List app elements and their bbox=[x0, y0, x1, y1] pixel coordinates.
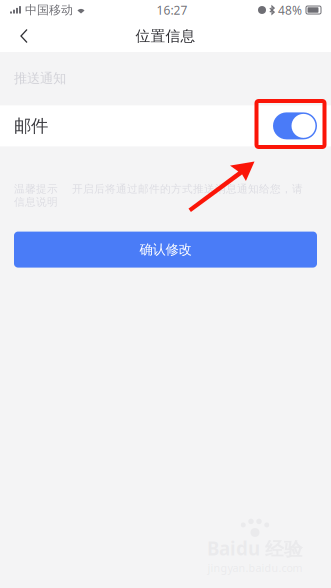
button[interactable]: 返回 bbox=[0, 20, 40, 52]
staticText: 邮件 bbox=[14, 115, 48, 136]
staticText: Baidu 经验 bbox=[207, 536, 303, 561]
staticText: 温馨提示 信息说明 bbox=[14, 182, 58, 209]
staticText: 位置信息 bbox=[135, 27, 195, 45]
staticText: 推送通知 bbox=[14, 70, 66, 86]
staticText: 开启后将通过邮件的方式推送消息通知给您，请 bbox=[72, 182, 303, 195]
button[interactable]: 确认修改 bbox=[14, 232, 317, 268]
staticText: 中国移动 bbox=[25, 3, 73, 17]
staticText: 确认修改 bbox=[139, 241, 191, 258]
staticText: 16:27 bbox=[156, 2, 187, 18]
staticText: 48% bbox=[278, 2, 302, 18]
